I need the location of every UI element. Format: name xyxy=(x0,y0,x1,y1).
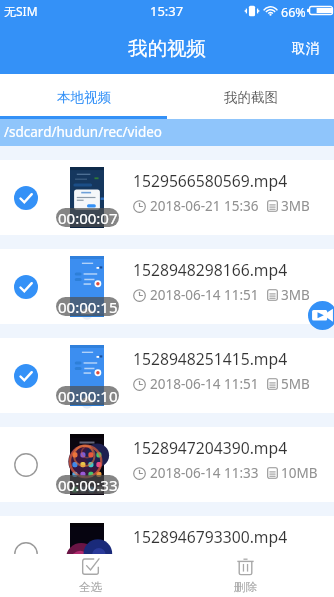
button[interactable]: 删除 xyxy=(215,554,276,594)
button[interactable]: Select item xyxy=(0,338,334,413)
staticText: 1528947204390.mp4 xyxy=(133,437,288,458)
staticText: 删除 xyxy=(234,580,257,594)
staticText: 1528948251415.mp4 xyxy=(133,348,288,369)
button[interactable]: Select item xyxy=(14,275,38,299)
staticText: 00:00:07 xyxy=(58,208,118,227)
staticText: 66% xyxy=(281,4,306,21)
button[interactable]: 我的截图 xyxy=(167,74,334,119)
button[interactable]: Select item xyxy=(0,160,334,235)
button[interactable]: 全选 xyxy=(60,554,121,594)
button[interactable]: Select item xyxy=(14,186,38,210)
button[interactable]: Select item xyxy=(0,427,334,502)
staticText: 3MB xyxy=(281,286,310,304)
staticText: 00:00:15 xyxy=(58,297,118,316)
staticText: 我的截图 xyxy=(224,89,278,106)
staticText: 2018-06-21 15:36 xyxy=(150,197,259,215)
staticText: 2018-06-14 11:33 xyxy=(150,464,259,482)
button[interactable]: Select item xyxy=(0,516,334,591)
button[interactable]: 取消 xyxy=(277,30,334,67)
staticText: 本地视频 xyxy=(57,89,111,106)
staticText: 15:37 xyxy=(150,2,184,20)
button[interactable]: 本地视频 xyxy=(0,74,167,119)
staticText: 1529566580569.mp4 xyxy=(133,170,288,191)
staticText: 5MB xyxy=(281,375,310,393)
staticText: 10MB xyxy=(281,464,318,482)
staticText: 1528948298166.mp4 xyxy=(133,259,288,280)
button[interactable]: Select item xyxy=(14,453,38,477)
staticText: 全选 xyxy=(79,580,102,594)
staticText: 2018-06-14 11:51 xyxy=(150,286,259,304)
staticText: 1528946793300.mp4 xyxy=(133,526,288,547)
staticText: 取消 xyxy=(292,40,319,57)
staticText: 2018-06-14 11:51 xyxy=(150,375,259,393)
button[interactable]: Select item xyxy=(14,364,38,388)
staticText: 00:00:33 xyxy=(58,475,118,494)
staticText: /sdcard/hudun/rec/video xyxy=(4,123,163,141)
button[interactable]: Record video xyxy=(308,301,334,330)
staticText: 00:00:10 xyxy=(58,386,118,405)
staticText: 2018-06-14 11:26 xyxy=(150,553,259,571)
staticText: 3MB xyxy=(281,197,310,215)
staticText: 00:00:21 xyxy=(58,564,118,583)
staticText: 我的视频 xyxy=(128,36,206,61)
button[interactable]: Select item xyxy=(0,249,334,324)
staticText: 无SIM xyxy=(4,3,38,19)
button[interactable]: Select item xyxy=(14,542,38,566)
